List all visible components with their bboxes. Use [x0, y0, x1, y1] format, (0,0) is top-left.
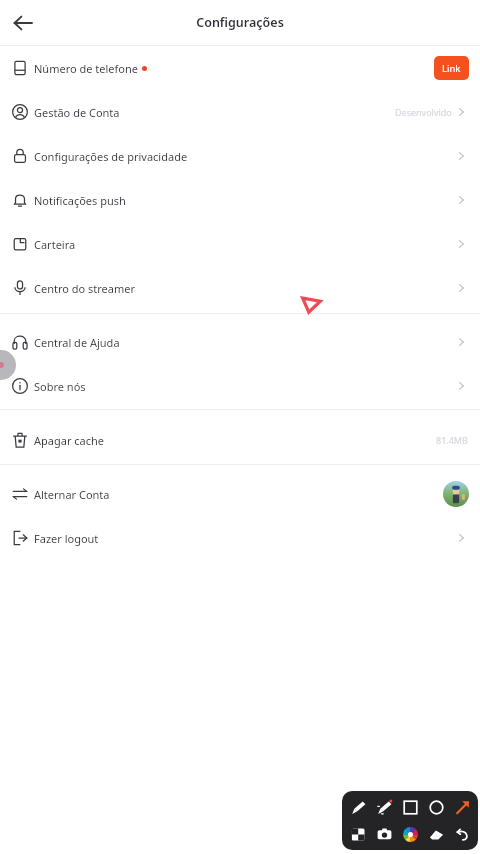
button[interactable]: Highlighter [374, 797, 394, 817]
staticText: Número de telefone [34, 61, 138, 76]
button[interactable]: Ellipse [426, 797, 446, 817]
button[interactable]: Brush [348, 797, 368, 817]
staticText: Central de Ajuda [34, 335, 120, 350]
staticText: Fazer logout [34, 531, 99, 546]
button[interactable]: Color [400, 824, 420, 844]
button[interactable]: Centro do streamer [0, 266, 480, 310]
staticText: Configurações [196, 14, 284, 31]
button[interactable]: Undo [452, 824, 472, 844]
button[interactable]: Notificações push [0, 178, 480, 222]
staticText: Configurações de privacidade [34, 149, 188, 164]
staticText: Notificações push [34, 193, 126, 208]
button[interactable]: Alternar Conta [0, 472, 480, 516]
staticText: Gestão de Conta [34, 105, 120, 120]
button[interactable]: Mosaic [348, 824, 368, 844]
staticText: Alternar Conta [34, 487, 110, 502]
button[interactable]: Arrow [452, 797, 472, 817]
staticText: Centro do streamer [34, 281, 136, 296]
staticText: Apagar cache [34, 433, 105, 448]
staticText: Desenvolvido [395, 106, 452, 118]
button[interactable]: Carteira [0, 222, 480, 266]
staticText: 81.4MB [436, 434, 468, 446]
staticText: Sobre nós [34, 379, 86, 394]
button[interactable]: Rectangle [400, 797, 420, 817]
button[interactable]: Back [6, 6, 40, 40]
button[interactable]: Central de Ajuda [0, 320, 480, 364]
button[interactable]: Profile avatar [443, 481, 469, 507]
button[interactable]: Link [434, 56, 469, 80]
button[interactable]: Fazer logout [0, 516, 480, 560]
button[interactable]: Sobre nós [0, 364, 480, 408]
button[interactable]: Eraser [426, 824, 446, 844]
button[interactable]: Apagar cache [0, 418, 480, 462]
staticText: Link [442, 62, 461, 75]
button[interactable]: Gestão de Conta [0, 90, 480, 134]
button[interactable]: Número de telefone [0, 46, 480, 90]
staticText: Carteira [34, 237, 76, 252]
button[interactable]: Configurações de privacidade [0, 134, 480, 178]
button[interactable]: Screenshot [374, 824, 394, 844]
